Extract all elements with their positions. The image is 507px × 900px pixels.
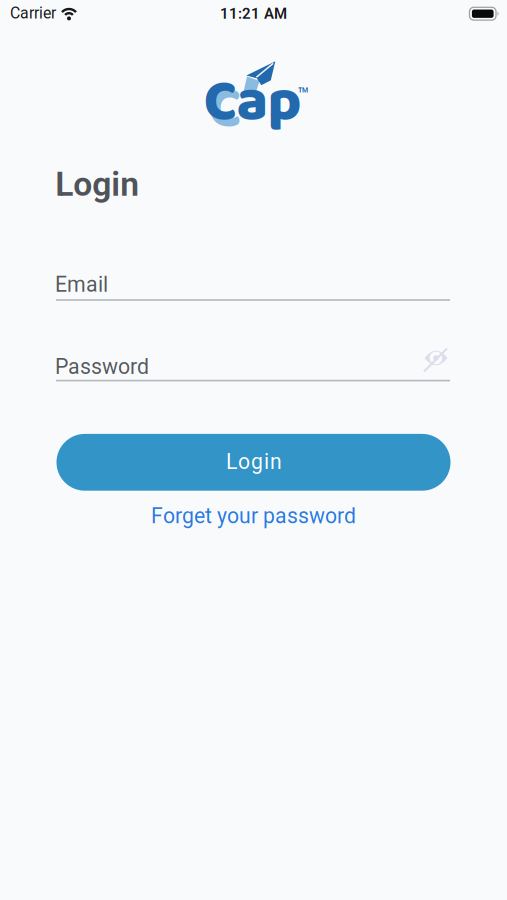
staticText: Forget your password — [151, 504, 356, 528]
staticText: Login — [55, 165, 139, 204]
button[interactable]: Show password — [421, 346, 451, 374]
button[interactable]: Password — [55, 350, 450, 383]
button[interactable]: Email — [55, 268, 450, 302]
staticText: Cap — [204, 57, 302, 149]
staticText: Login — [226, 449, 282, 474]
button[interactable]: Forget your password — [151, 504, 356, 528]
staticText: Email — [55, 272, 108, 297]
button[interactable]: Login — [56, 434, 450, 491]
staticText: Password — [55, 354, 149, 379]
staticText: TM — [298, 86, 308, 94]
staticText: 11:21 AM — [220, 5, 287, 22]
staticText: Carrier — [10, 4, 56, 22]
staticText: C — [208, 64, 241, 155]
